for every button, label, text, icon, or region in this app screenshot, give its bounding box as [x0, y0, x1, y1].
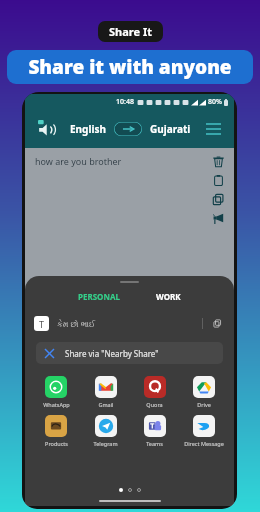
- button[interactable]: Drive: [179, 375, 228, 409]
- staticText: Telegram: [93, 440, 118, 447]
- button[interactable]: Copy: [209, 190, 228, 209]
- staticText: Gmail: [98, 401, 114, 408]
- staticText: Gujarati: [150, 122, 191, 136]
- staticText: PERSONAL: [78, 291, 120, 302]
- button[interactable]: Share via "Nearby Share": [36, 342, 223, 364]
- staticText: 10:48: [116, 97, 134, 107]
- staticText: Drive: [197, 401, 211, 408]
- staticText: English: [70, 122, 106, 136]
- button[interactable]: PERSONAL: [68, 288, 130, 305]
- staticText: how are you brother: [35, 155, 122, 167]
- button[interactable]: Teams: [130, 414, 179, 448]
- staticText: 80%: [208, 97, 222, 107]
- button[interactable]: Speak: [34, 116, 60, 142]
- button[interactable]: Products: [31, 414, 81, 448]
- button[interactable]: Paste from clipboard: [209, 171, 228, 190]
- staticText: Quora: [146, 401, 163, 408]
- staticText: Share It: [109, 24, 152, 39]
- button[interactable]: Announce: [209, 209, 228, 228]
- button[interactable]: Telegram: [81, 414, 130, 448]
- staticText: T: [39, 318, 45, 330]
- button[interactable]: Swap languages: [114, 122, 142, 136]
- staticText: Share it with anyone: [7, 54, 253, 80]
- staticText: Teams: [146, 440, 163, 447]
- staticText: Share via "Nearby Share": [65, 348, 159, 359]
- button[interactable]: WhatsApp: [31, 375, 81, 409]
- button[interactable]: Delete: [209, 152, 228, 171]
- staticText: WhatsApp: [43, 401, 70, 408]
- button[interactable]: T: [34, 313, 225, 334]
- staticText: Products: [45, 440, 68, 447]
- button[interactable]: WORK: [146, 288, 191, 305]
- button[interactable]: Direct Message: [179, 414, 228, 448]
- button[interactable]: Menu: [201, 117, 225, 141]
- staticText: Direct Message: [184, 440, 224, 447]
- staticText: કેમ છો ભાઈ: [57, 318, 96, 329]
- button[interactable]: Gmail: [81, 375, 130, 409]
- button[interactable]: Share It: [98, 21, 163, 42]
- button[interactable]: Copy translated text: [210, 316, 225, 331]
- staticText: WORK: [156, 291, 181, 302]
- button[interactable]: Quora: [130, 375, 179, 409]
